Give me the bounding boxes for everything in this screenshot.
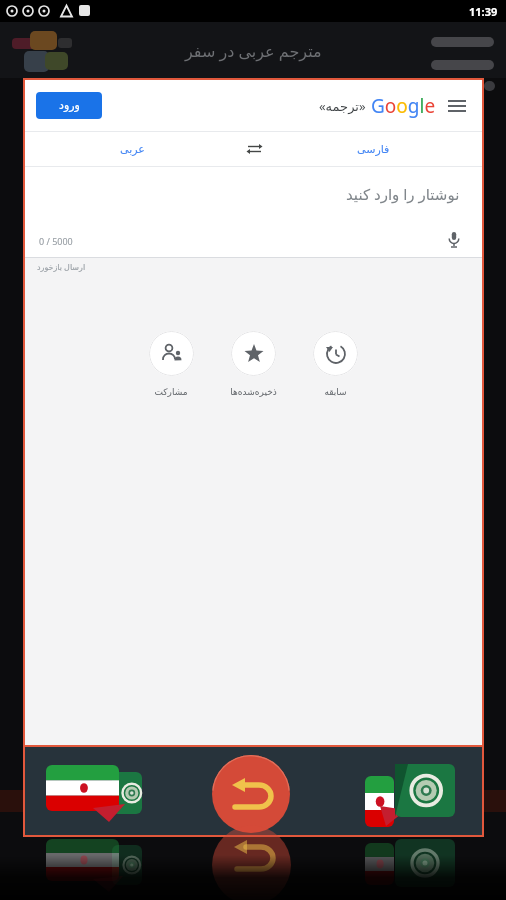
button[interactable] xyxy=(212,755,290,833)
button[interactable]: عربی xyxy=(80,132,185,166)
button[interactable] xyxy=(237,132,271,166)
staticText: ذخیره‌شده‌ها xyxy=(230,387,277,397)
button[interactable] xyxy=(313,331,358,376)
staticText: فارسی xyxy=(357,143,390,156)
button[interactable]: ورود xyxy=(36,92,102,119)
staticText: Google xyxy=(371,93,436,119)
staticText: 11:39 xyxy=(469,4,498,19)
staticText: ارسال بازخورد xyxy=(37,261,86,272)
staticText: 0 / 5000 xyxy=(39,235,73,247)
button[interactable] xyxy=(448,99,466,113)
button[interactable] xyxy=(358,762,476,830)
staticText: نوشتار را وارد کنید xyxy=(346,184,460,204)
button[interactable] xyxy=(231,331,276,376)
button[interactable] xyxy=(448,232,460,248)
button[interactable] xyxy=(45,762,163,830)
staticText: مترجم عربی در سفر xyxy=(185,40,322,62)
staticText: مشارکت xyxy=(154,387,188,397)
staticText: ورود xyxy=(59,99,80,112)
staticText: سابقه xyxy=(324,387,347,397)
button[interactable] xyxy=(149,331,194,376)
staticText: عربی xyxy=(120,143,145,156)
button[interactable]: فارسی xyxy=(321,132,426,166)
staticText: «ترجمه» xyxy=(319,97,366,115)
